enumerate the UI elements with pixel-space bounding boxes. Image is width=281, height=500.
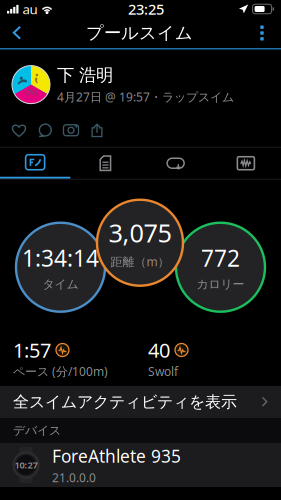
button[interactable]: Share bbox=[84, 121, 110, 140]
staticText: ペース (分/100m) bbox=[13, 363, 108, 379]
staticText: 1:34:14 bbox=[22, 243, 99, 273]
staticText: カロリー bbox=[196, 277, 244, 292]
staticText: 772 bbox=[201, 243, 240, 273]
staticText: 40 bbox=[148, 337, 170, 363]
staticText: 10:27 bbox=[14, 459, 37, 471]
staticText: プールスイム bbox=[86, 22, 193, 44]
staticText: デバイス bbox=[13, 423, 61, 438]
button[interactable]: Charts bbox=[211, 148, 281, 179]
staticText: タイム bbox=[42, 277, 78, 292]
button[interactable]: Add photo bbox=[58, 121, 84, 140]
staticText: 23:25 bbox=[128, 0, 164, 19]
staticText: Swolf bbox=[148, 363, 178, 379]
staticText: au bbox=[22, 0, 37, 18]
button[interactable]: Back bbox=[2, 18, 32, 48]
button[interactable]: 10:27 bbox=[0, 443, 281, 487]
button[interactable]: Laps bbox=[70, 148, 140, 179]
button[interactable]: Summary bbox=[0, 148, 70, 179]
staticText: 4月27日 @ 19:57・ラップスイム bbox=[57, 89, 234, 105]
button[interactable]: Comment bbox=[32, 121, 58, 140]
staticText: ForeAthlete 935 bbox=[52, 444, 181, 467]
staticText: 全スイムアクティビティを表示 bbox=[13, 392, 237, 412]
button[interactable]: Like bbox=[6, 121, 32, 140]
staticText: 1:57 bbox=[13, 337, 51, 363]
staticText: 3,075 bbox=[108, 216, 171, 249]
staticText: 距離（m） bbox=[110, 254, 169, 269]
staticText: 下 浩明 bbox=[57, 64, 113, 86]
button[interactable]: Intervals bbox=[140, 148, 211, 179]
button[interactable]: 全スイムアクティビティを表示 bbox=[0, 386, 281, 418]
button[interactable]: More options bbox=[247, 18, 277, 48]
staticText: 21.0.0.0 bbox=[52, 469, 96, 485]
